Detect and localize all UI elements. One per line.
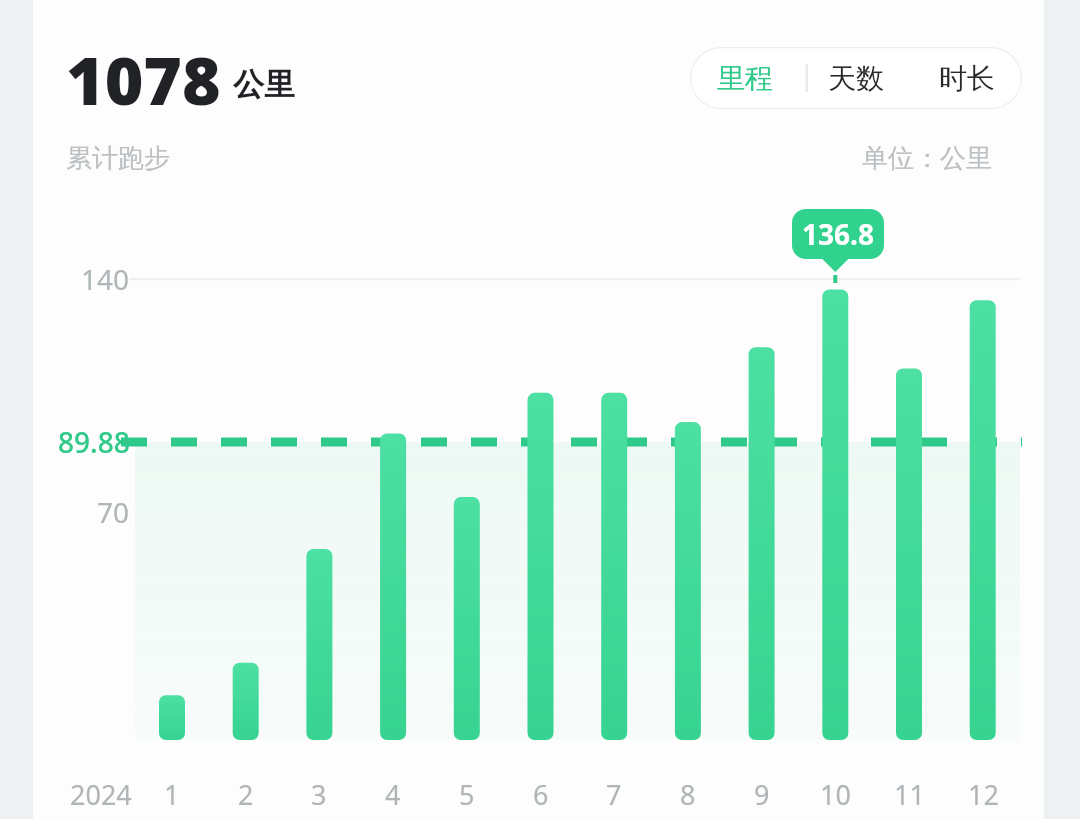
staticText: 11 [894, 776, 925, 813]
button[interactable]: Value 136.8 [792, 209, 884, 259]
staticText: 2024 [70, 776, 132, 813]
staticText: 140 [81, 260, 130, 298]
staticText: 公里 [233, 65, 295, 104]
staticText: 单位：公里 [862, 142, 992, 175]
staticText: 1 [164, 776, 180, 813]
staticText: 4 [385, 776, 401, 813]
staticText: 9 [754, 776, 770, 813]
staticText: 天数 [828, 61, 884, 96]
button[interactable]: 时长 [911, 47, 1022, 109]
staticText: 12 [968, 776, 999, 813]
staticText: 70 [97, 493, 130, 531]
staticText: 7 [606, 776, 622, 813]
staticText: 136.8 [802, 215, 874, 253]
staticText: 6 [533, 776, 549, 813]
staticText: 时长 [939, 61, 995, 96]
staticText: 8 [680, 776, 696, 813]
staticText: 5 [459, 776, 475, 813]
staticText: 1078 [66, 34, 221, 112]
staticText: 89.88 [58, 423, 130, 461]
staticText: 累计跑步 [66, 142, 170, 175]
staticText: 2 [238, 776, 254, 813]
staticText: 10 [820, 776, 851, 813]
staticText: 里程 [717, 61, 773, 96]
staticText: 3 [311, 776, 327, 813]
button[interactable]: 天数 [800, 47, 911, 109]
button[interactable]: 里程 [690, 47, 800, 109]
